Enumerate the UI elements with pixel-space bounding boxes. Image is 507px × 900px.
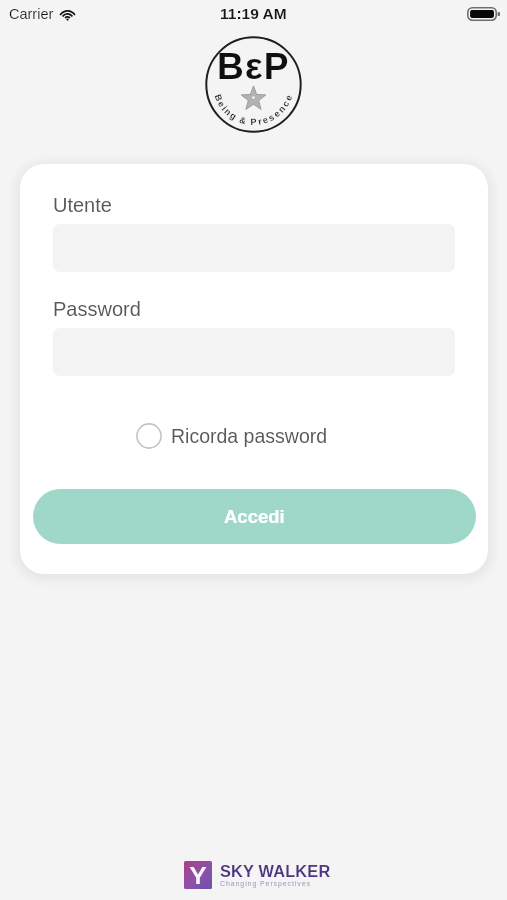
staticText: 11:19 AM: [220, 5, 287, 22]
staticText: Changing Perspectives: [220, 880, 311, 888]
button[interactable]: Accedi: [33, 489, 476, 544]
staticText: Password: [53, 298, 141, 320]
staticText: Ricorda password: [171, 425, 328, 447]
other: BεP - Being & Presence logo: [205, 36, 302, 133]
staticText: Accedi: [224, 506, 285, 527]
button[interactable]: Ricorda password: [132, 419, 332, 453]
staticText: Utente: [53, 194, 112, 216]
staticText: Carrier: [9, 6, 54, 22]
staticText: SKY WALKER: [220, 862, 331, 880]
